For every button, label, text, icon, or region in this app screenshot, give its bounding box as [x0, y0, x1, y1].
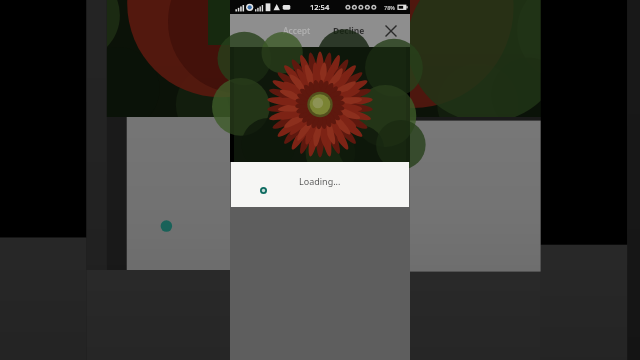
staticText: Loading...	[299, 175, 341, 187]
staticText: Decline	[333, 25, 365, 37]
staticText: 12:54	[310, 2, 330, 12]
staticText: Accept	[283, 25, 311, 37]
button[interactable]: Close	[377, 17, 405, 45]
button[interactable]: Decline	[328, 21, 370, 41]
staticText: 78%	[384, 4, 395, 11]
button[interactable]: Accept	[278, 21, 316, 41]
